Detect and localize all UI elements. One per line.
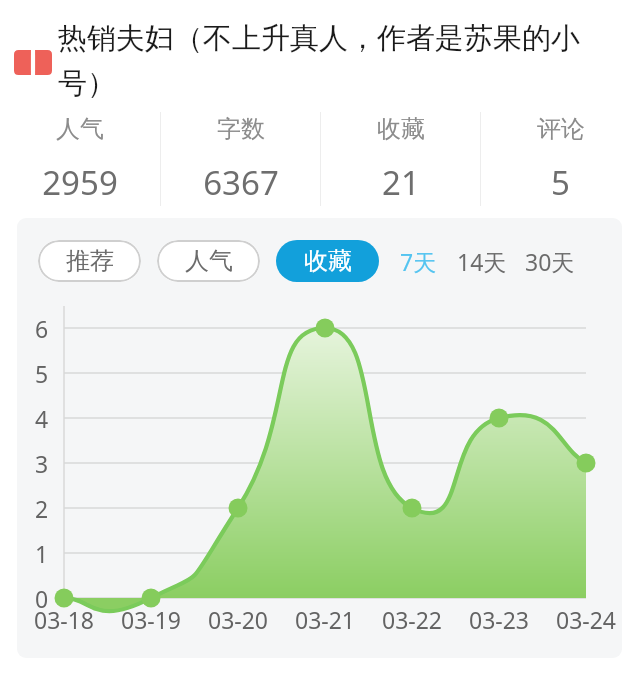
staticText: 热销夫妇（不上升真人，作者是苏果的小号） [58, 20, 636, 101]
button[interactable]: 收藏 [276, 240, 379, 282]
staticText: 21 [382, 160, 420, 205]
staticText: 03-20 [202, 604, 274, 635]
staticText: 03-19 [115, 604, 187, 635]
staticText: 收藏 [304, 246, 352, 276]
staticText: 5 [551, 160, 570, 205]
staticText: 推荐 [66, 246, 114, 276]
button[interactable]: Book [14, 20, 636, 101]
staticText: 字数 [217, 114, 265, 144]
staticText: 03-21 [289, 604, 361, 635]
button[interactable]: 字数 [161, 114, 320, 205]
staticText: 6 [35, 313, 49, 344]
button[interactable]: 人气 [0, 114, 160, 205]
staticText: 人气 [56, 114, 104, 144]
staticText: 评论 [537, 114, 585, 144]
staticText: 03-22 [376, 604, 448, 635]
staticText: 14天 [457, 246, 507, 277]
button[interactable]: 人气 [157, 240, 260, 282]
staticText: 0 [35, 583, 49, 614]
other: Book [14, 50, 52, 75]
button[interactable]: 30天 [522, 241, 578, 282]
staticText: 30天 [525, 246, 575, 277]
button[interactable]: 收藏 [321, 114, 480, 205]
staticText: 3 [35, 448, 49, 479]
button[interactable]: 推荐 [38, 240, 141, 282]
staticText: 7天 [400, 246, 437, 277]
staticText: 收藏 [377, 114, 425, 144]
staticText: 5 [35, 358, 49, 389]
staticText: 1 [35, 538, 49, 569]
staticText: 03-24 [550, 604, 622, 635]
button[interactable]: 14天 [454, 241, 510, 282]
staticText: 2 [35, 493, 49, 524]
staticText: 03-23 [463, 604, 535, 635]
staticText: 2959 [42, 160, 118, 205]
button[interactable]: 评论 [481, 114, 640, 205]
staticText: 6367 [203, 160, 279, 205]
staticText: 4 [35, 403, 49, 434]
staticText: 03-18 [28, 604, 100, 635]
staticText: 人气 [185, 246, 233, 276]
button[interactable]: 7天 [397, 241, 440, 282]
